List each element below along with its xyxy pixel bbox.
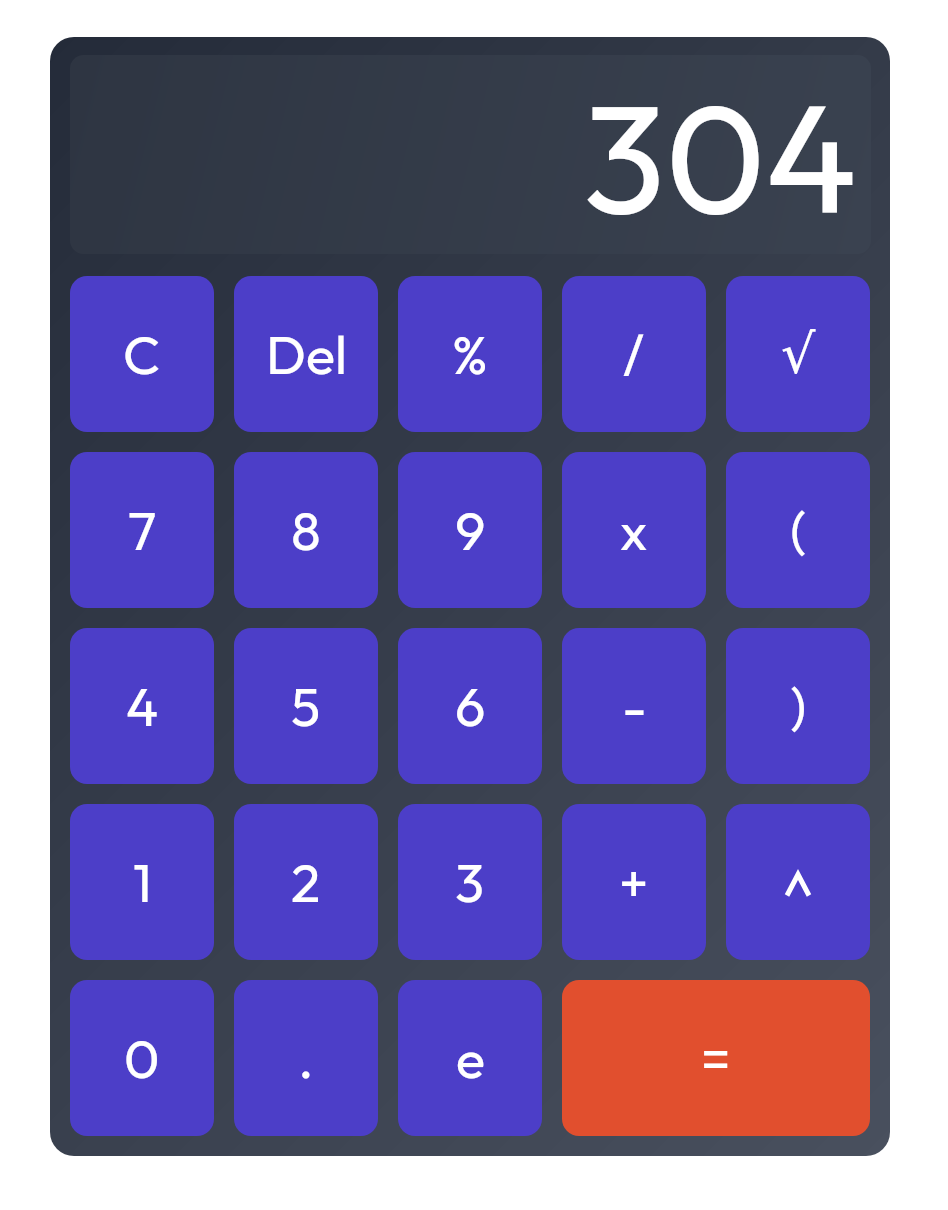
button[interactable]: Square root (726, 276, 870, 432)
button[interactable]: Clear (70, 276, 214, 432)
button[interactable]: 3 (398, 804, 542, 960)
staticText: % (452, 320, 488, 388)
button[interactable]: 7 (70, 452, 214, 608)
button[interactable]: 9 (398, 452, 542, 608)
staticText: 7 (128, 496, 157, 564)
button[interactable]: Close bracket (726, 628, 870, 784)
button[interactable]: 5 (234, 628, 378, 784)
staticText: 3 (455, 848, 485, 916)
button[interactable]: Result 304 (70, 55, 871, 254)
button[interactable]: Equals (562, 980, 870, 1136)
staticText: 6 (455, 672, 486, 740)
staticText: 4 (126, 672, 159, 740)
staticText: ( (790, 496, 807, 564)
button[interactable]: Open bracket (726, 452, 870, 608)
staticText: 8 (291, 496, 321, 564)
staticText: √ (781, 323, 816, 386)
staticText: e (456, 1024, 485, 1092)
staticText: 0 (124, 1024, 160, 1092)
button[interactable]: 6 (398, 628, 542, 784)
button[interactable]: Power (726, 804, 870, 960)
staticText: - (622, 672, 647, 740)
staticText: 9 (455, 496, 486, 564)
staticText: 2 (291, 848, 321, 916)
staticText: . (298, 1024, 314, 1092)
button[interactable]: Delete (234, 276, 378, 432)
button[interactable]: Divide (562, 276, 706, 432)
staticText: 1 (133, 848, 152, 916)
staticText: Del (266, 320, 347, 388)
button[interactable]: 0 (70, 980, 214, 1136)
button[interactable]: Plus (562, 804, 706, 960)
button[interactable]: 1 (70, 804, 214, 960)
button[interactable]: 2 (234, 804, 378, 960)
staticText: x (620, 496, 648, 564)
staticText: 5 (291, 672, 321, 740)
staticText: / (623, 320, 645, 388)
button[interactable]: Minus (562, 628, 706, 784)
button[interactable]: Euler's number (398, 980, 542, 1136)
staticText: C (123, 320, 161, 388)
staticText: ) (790, 672, 807, 740)
button[interactable]: 4 (70, 628, 214, 784)
button[interactable]: Percent (398, 276, 542, 432)
staticText: 304 (583, 60, 858, 253)
staticText: = (701, 1024, 731, 1092)
staticText: + (619, 848, 649, 916)
button[interactable]: Multiply (562, 452, 706, 608)
button[interactable]: Decimal point (234, 980, 378, 1136)
button[interactable]: 8 (234, 452, 378, 608)
